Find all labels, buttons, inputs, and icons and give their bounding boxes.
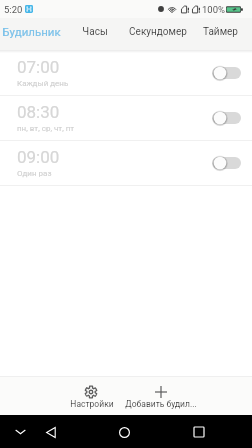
staticText: Настройки <box>70 399 114 409</box>
button[interactable]: Таймер <box>189 18 252 50</box>
staticText: 08:30 <box>17 102 60 122</box>
staticText: Будильник <box>2 25 61 38</box>
button[interactable]: Toggle alarm <box>212 65 242 81</box>
staticText: 5:20 <box>4 4 23 15</box>
staticText: Один раз <box>17 169 52 178</box>
button[interactable]: Recent apps <box>188 421 210 443</box>
button[interactable]: Добавить будил... <box>124 382 197 412</box>
staticText: Часы <box>82 26 108 38</box>
button[interactable]: Секундомер <box>126 18 189 50</box>
staticText: Каждый день <box>17 79 69 88</box>
button[interactable]: Hide navigation bar <box>11 423 29 441</box>
staticText: Добавить будил... <box>125 399 197 409</box>
button[interactable]: Настройки <box>69 382 114 412</box>
button[interactable]: Будильник <box>0 18 63 50</box>
button[interactable]: Home <box>113 421 135 443</box>
staticText: 09:00 <box>17 147 60 167</box>
staticText: Таймер <box>203 26 238 38</box>
button[interactable]: Toggle alarm <box>212 110 242 126</box>
button[interactable]: 08:30 <box>0 96 252 141</box>
staticText: 07:00 <box>17 57 60 77</box>
staticText: пн, вт, ср, чт, пт <box>17 124 75 133</box>
button[interactable]: 09:00 <box>0 141 252 186</box>
button[interactable]: Back <box>41 422 61 442</box>
button[interactable]: Toggle alarm <box>212 155 242 171</box>
button[interactable]: Часы <box>63 18 126 50</box>
staticText: 100% <box>202 4 225 15</box>
staticText: Секундомер <box>129 26 187 38</box>
button[interactable]: 07:00 <box>0 51 252 96</box>
